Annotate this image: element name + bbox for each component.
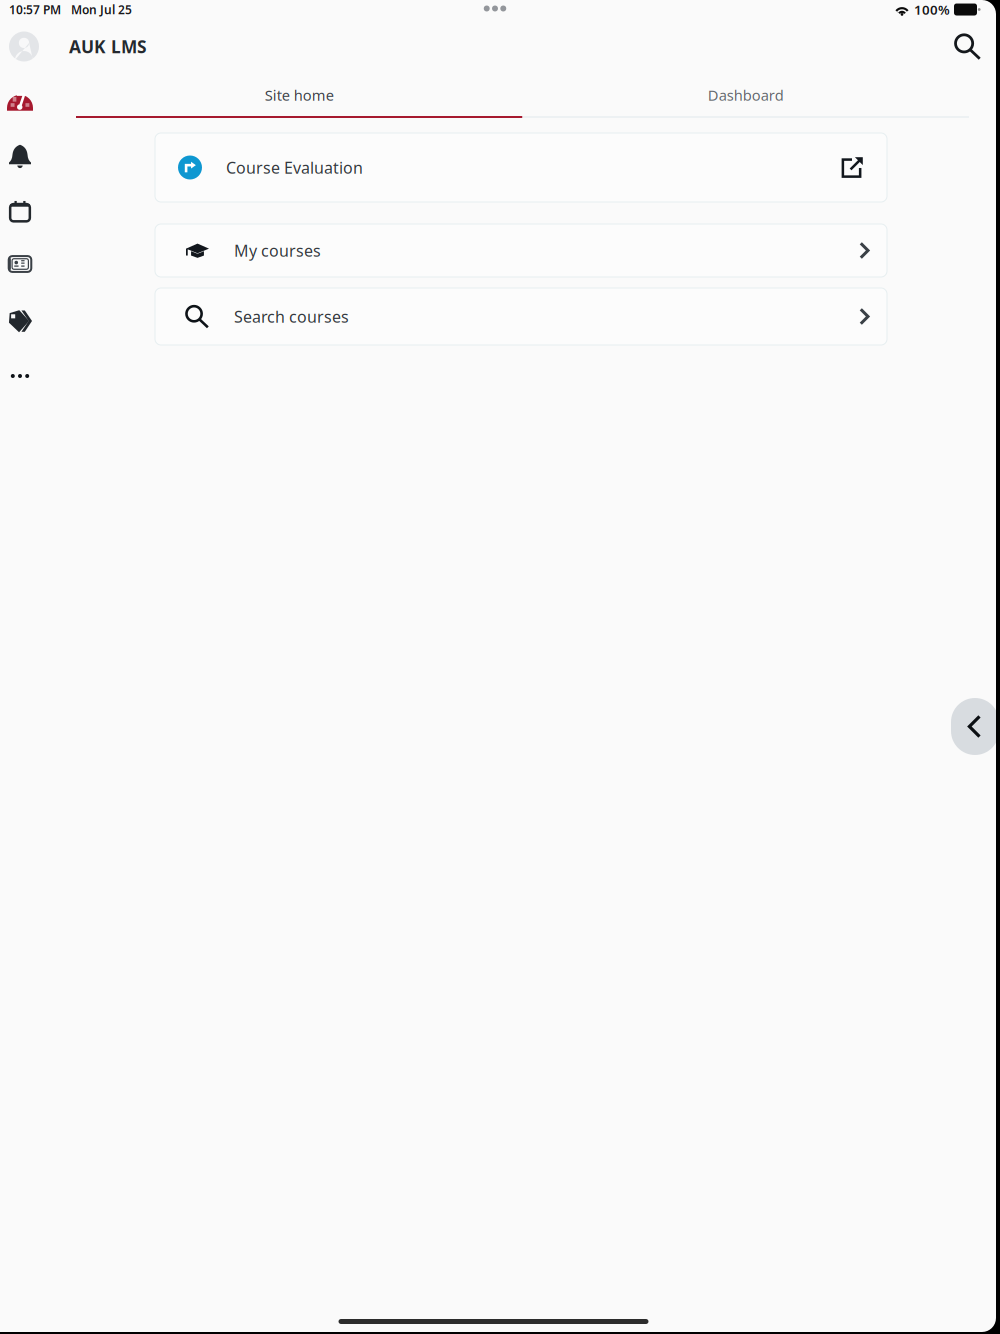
button[interactable]: Dashboard [3,87,37,110]
button[interactable]: Tags [3,308,37,334]
staticText: Site home [265,85,334,105]
button[interactable]: Course Evaluation [155,133,887,202]
button[interactable]: Profile [3,27,45,65]
button[interactable]: Open side panel [951,698,999,755]
staticText: My courses [234,240,321,261]
button[interactable]: My courses [155,224,887,277]
button[interactable]: Dashboard [522,74,969,116]
staticText: 100% [914,1,950,18]
button[interactable]: Calendar [3,199,37,225]
staticText: Search courses [234,306,349,327]
button[interactable]: Search [950,28,986,64]
staticText: Mon Jul 25 [71,1,132,17]
staticText: Course Evaluation [226,157,363,178]
button[interactable]: More [3,364,37,388]
button[interactable]: Notifications [3,143,37,170]
staticText: AUK LMS [69,35,147,58]
button[interactable]: Search courses [155,288,887,345]
staticText: 10:57 PM [9,1,61,17]
button[interactable]: Site home [76,74,522,116]
staticText: Dashboard [708,85,784,105]
button[interactable]: My card [3,251,37,277]
